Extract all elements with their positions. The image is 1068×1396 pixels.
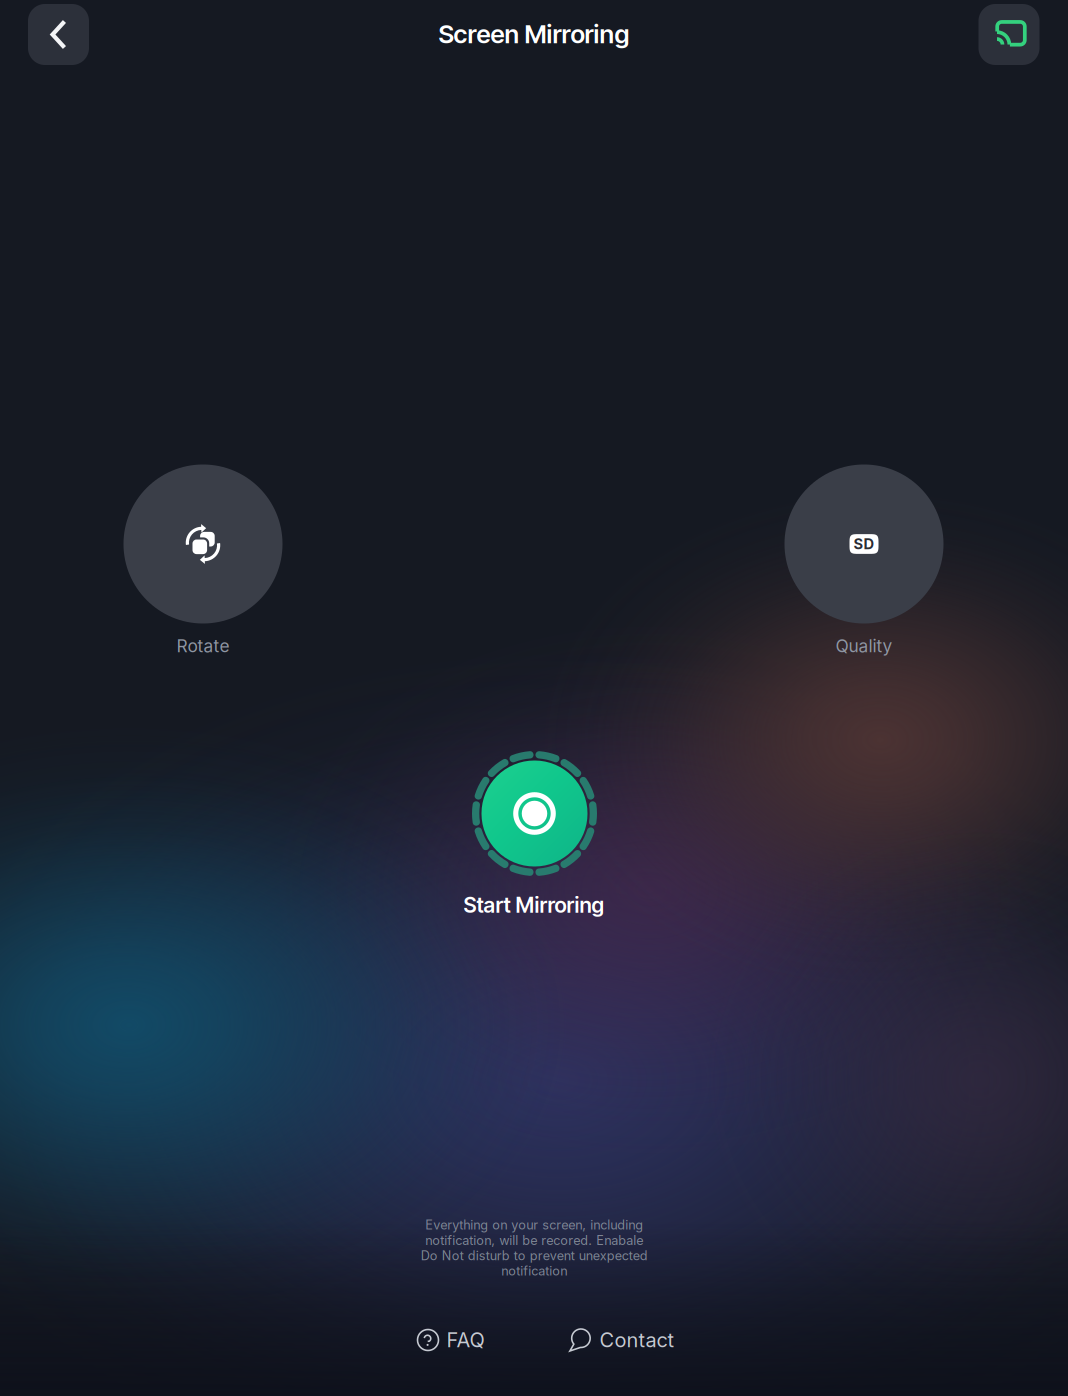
staticText: SD [853, 535, 874, 553]
button[interactable]: Start Mirroring [472, 751, 597, 876]
button[interactable]: Cast to device [978, 4, 1039, 65]
staticText: Start Mirroring [463, 892, 604, 918]
staticText: Contact [599, 1328, 674, 1352]
staticText: Rotate [176, 635, 229, 656]
staticText: Screen Mirroring [438, 19, 629, 49]
button[interactable]: Quality [784, 464, 943, 623]
button[interactable]: Contact [566, 1320, 676, 1360]
button[interactable]: FAQ [406, 1320, 496, 1360]
button[interactable]: Back [28, 4, 89, 65]
staticText: FAQ [446, 1328, 484, 1352]
button[interactable]: Rotate [123, 464, 282, 623]
staticText: Everything on your screen, including not… [420, 1217, 647, 1279]
staticText: Quality [835, 635, 892, 656]
